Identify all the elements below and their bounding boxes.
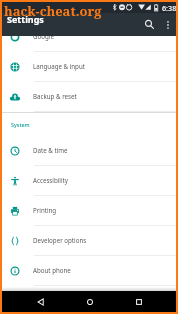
button[interactable]: Backup & reset [2,82,176,112]
staticText: System [11,121,30,128]
button[interactable]: About phone [2,256,176,286]
staticText: Language & input [33,62,85,70]
staticText: Backup & reset [33,92,77,100]
button[interactable]: Recents [126,291,152,312]
button[interactable]: Search [141,13,159,36]
button[interactable]: Printing [2,196,176,226]
button[interactable]: Accessibility [2,166,176,196]
button[interactable]: Date & time [2,136,176,166]
staticText: 6:38 [162,3,177,13]
button[interactable]: Developer options [2,226,176,256]
button[interactable]: Home [77,291,103,312]
staticText: Google [33,32,54,40]
button[interactable]: More options [160,13,176,36]
staticText: Settings [7,13,44,25]
staticText: Accessibility [33,176,68,184]
staticText: Printing [33,206,57,214]
staticText: hack-cheat.org [4,2,102,20]
button[interactable]: Back [28,291,54,312]
button[interactable]: Google [2,22,176,52]
button[interactable]: Language & input [2,52,176,82]
staticText: Date & time [33,146,68,154]
staticText: Developer options [33,236,87,244]
staticText: About phone [33,266,71,274]
